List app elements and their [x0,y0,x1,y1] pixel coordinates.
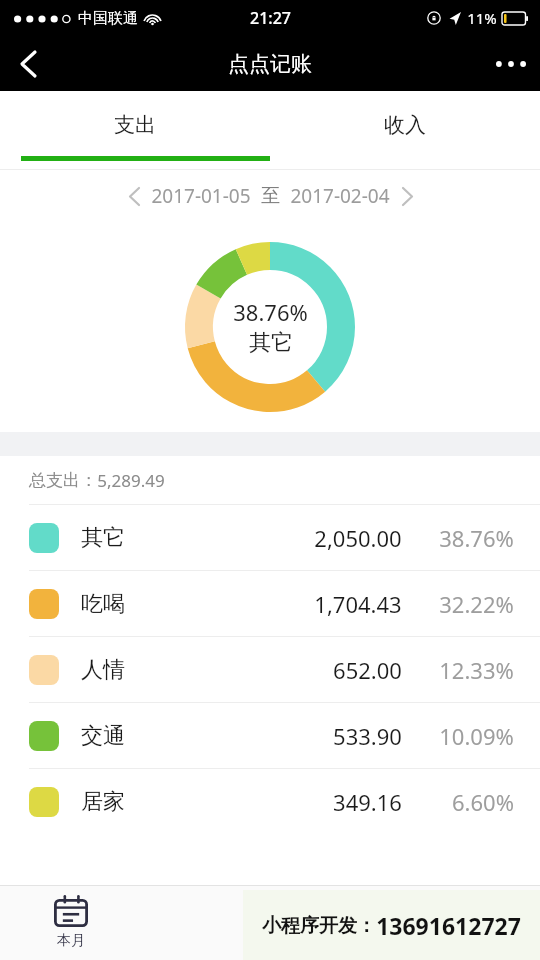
staticText: 居家 [81,788,125,816]
button[interactable]: 小程序开发： [243,890,540,960]
button[interactable]: Previous period [117,179,151,213]
staticText: 11% [467,8,497,28]
staticText: 交通 [81,722,125,750]
staticText: 收入 [384,112,426,138]
staticText: 38.76% [233,297,308,327]
staticText: 2,050.00 [314,523,402,553]
button[interactable]: Back [0,36,56,91]
button[interactable]: 吃喝 [0,571,540,636]
staticText: 2017-01-05 [151,183,251,209]
button[interactable]: 居家 [0,769,540,834]
staticText: 13691612727 [376,910,521,941]
staticText: 1,704.43 [314,589,402,619]
staticText: 中国联通 [78,9,138,28]
button[interactable]: 支出 [0,91,270,170]
staticText: 其它 [249,329,293,357]
staticText: 本月 [57,932,85,950]
staticText: 至 [261,184,280,208]
staticText: 吃喝 [81,590,125,618]
staticText: 5,289.49 [97,469,165,492]
button[interactable]: 本月 [54,895,88,950]
staticText: 349.16 [333,787,402,817]
staticText: 其它 [81,524,125,552]
button[interactable]: 其它 [0,505,540,570]
staticText: 10.09% [439,721,514,751]
staticText: 21:27 [250,7,291,29]
staticText: 点点记账 [228,51,312,77]
staticText: 2017-02-04 [290,183,390,209]
button[interactable]: 人情 [0,637,540,702]
staticText: 38.76% [439,523,514,553]
button[interactable]: 收入 [270,91,540,170]
staticText: 32.22% [439,589,514,619]
button[interactable]: 交通 [0,703,540,768]
staticText: 652.00 [333,655,402,685]
staticText: 533.90 [333,721,402,751]
staticText: 支出 [114,112,156,138]
staticText: 6.60% [452,787,514,817]
staticText: 人情 [81,656,125,684]
button[interactable]: Next period [390,179,424,213]
staticText: 总支出： [29,470,97,491]
button[interactable]: More options [482,36,540,91]
staticText: 小程序开发： [262,914,376,938]
staticText: 12.33% [439,655,514,685]
